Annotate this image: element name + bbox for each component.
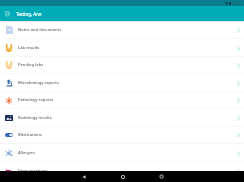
button[interactable]: Medications [0,126,244,144]
staticText: Pathology reports [18,97,54,103]
staticText: Medications [18,132,42,138]
button[interactable]: Back [64,171,103,182]
button[interactable]: Immunizations [0,162,244,180]
staticText: Notes and documents [18,27,62,33]
other: Recent apps [160,175,163,178]
other: Patient [5,11,10,17]
button[interactable]: Notes and documents [0,21,244,39]
button[interactable]: Home [103,171,142,182]
button[interactable]: Recent apps [142,171,181,182]
other: Home [121,175,125,179]
button[interactable]: Microbiology reports [0,74,244,92]
button[interactable]: Lab results [0,39,244,57]
button[interactable]: Pathology reports [0,91,244,109]
button[interactable]: Pending labs [0,56,244,74]
button[interactable]: Allergies [0,144,244,162]
staticText: Testing, Ann [16,11,42,17]
other: Back [82,175,86,179]
staticText: Lab results [18,45,40,51]
staticText: Pending labs [18,62,44,68]
staticText: 2:46 [232,1,240,6]
staticText: Immunizations [18,168,48,174]
staticText: Allergies [18,150,35,156]
staticText: Radiology results [18,115,52,121]
staticText: Microbiology reports [18,80,59,86]
button[interactable]: Radiology results [0,109,244,127]
